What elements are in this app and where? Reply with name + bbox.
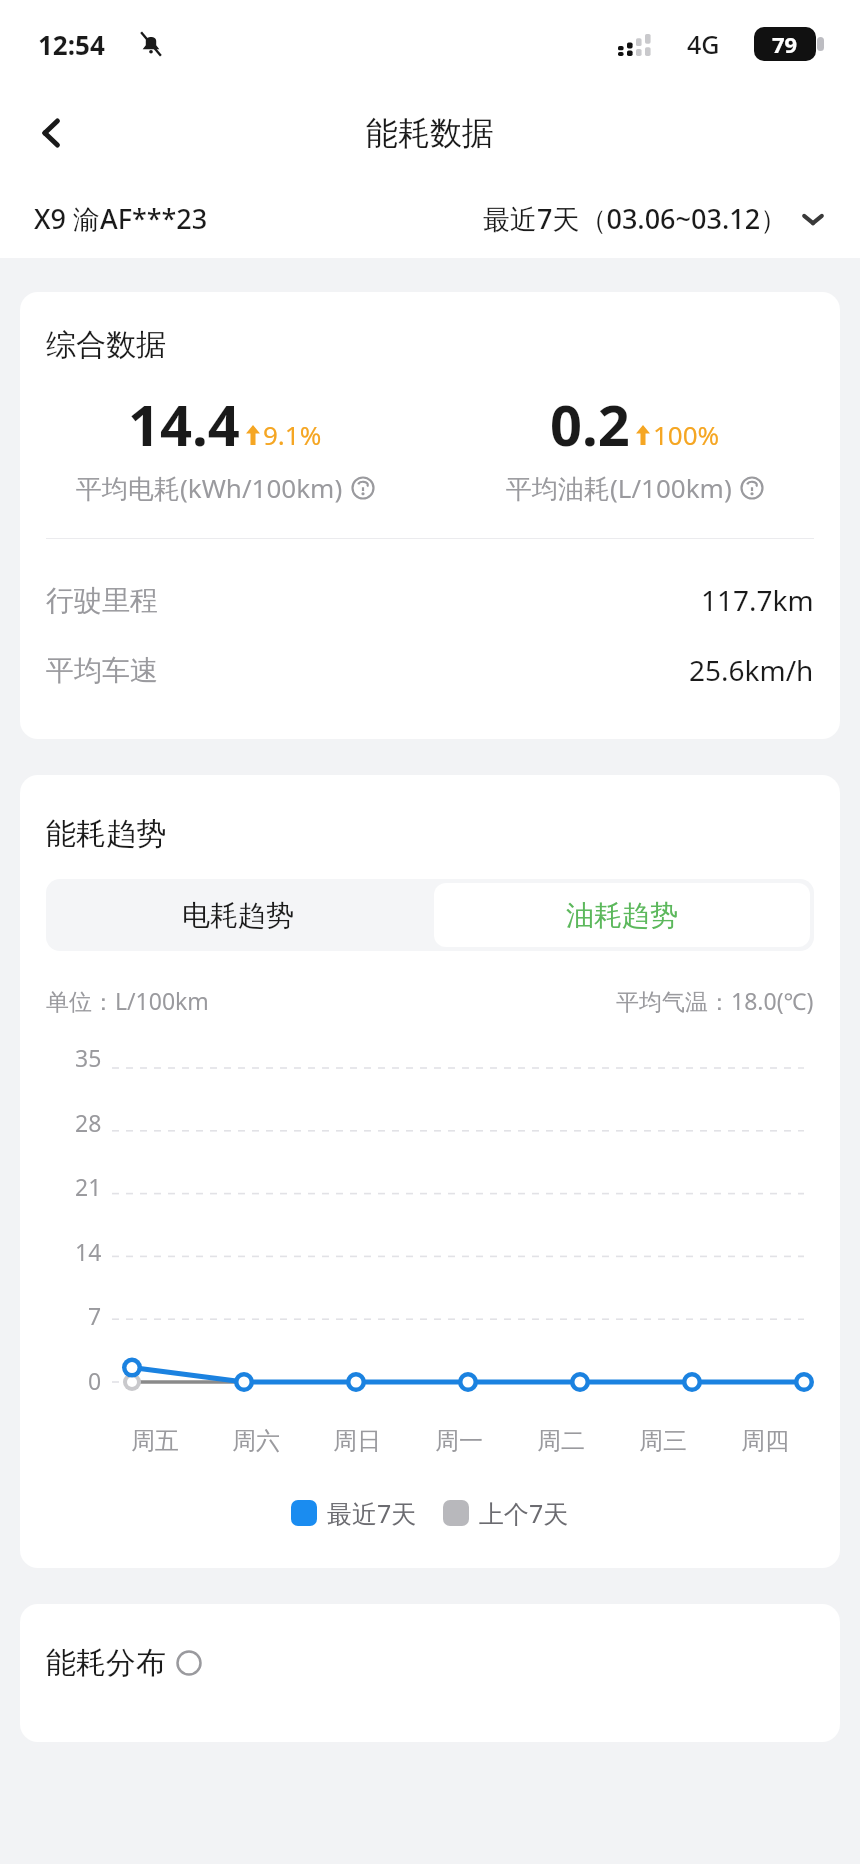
staticText: 14 — [75, 1236, 102, 1267]
staticText: 电耗趋势 — [182, 898, 294, 933]
staticText: X9 渝AF***23 — [34, 200, 208, 237]
staticText: 能耗数据 — [366, 113, 494, 153]
button[interactable]: 0.2 — [430, 386, 840, 506]
staticText: 平均车速 — [46, 653, 158, 688]
staticText: 能耗趋势 — [46, 815, 166, 853]
staticText: 7 — [88, 1300, 102, 1331]
staticText: 100% — [653, 417, 720, 452]
staticText: 117.7km — [701, 581, 814, 619]
staticText: 79 — [772, 29, 798, 59]
button[interactable]: 电耗趋势 — [46, 879, 430, 951]
staticText: 平均电耗(kWh/100km) — [76, 470, 343, 506]
staticText: 平均气温：18.0(℃) — [616, 985, 814, 1016]
staticText: 油耗趋势 — [566, 898, 678, 933]
staticText: 35 — [75, 1042, 102, 1073]
staticText: 周二 — [537, 1426, 585, 1456]
staticText: 能耗分布 — [46, 1644, 166, 1682]
staticText: 14.4 — [128, 386, 240, 462]
staticText: 0 — [88, 1365, 102, 1396]
staticText: 周五 — [131, 1426, 179, 1456]
button[interactable]: Help — [176, 1650, 202, 1676]
staticText: 0.2 — [550, 386, 630, 462]
staticText: 28 — [75, 1107, 102, 1138]
button[interactable]: Back — [20, 101, 84, 165]
staticText: 上个7天 — [479, 1496, 569, 1530]
staticText: 周四 — [741, 1426, 789, 1456]
staticText: 周日 — [333, 1426, 381, 1456]
staticText: 综合数据 — [46, 326, 166, 364]
button[interactable]: 行驶里程 — [20, 565, 840, 635]
staticText: 21 — [75, 1171, 102, 1202]
staticText: 周六 — [232, 1426, 280, 1456]
staticText: 周三 — [639, 1426, 687, 1456]
staticText: 4G — [687, 27, 720, 61]
staticText: 12:54 — [38, 27, 105, 62]
button[interactable]: 油耗趋势 — [434, 883, 810, 947]
staticText: 平均油耗(L/100km) — [506, 470, 732, 506]
button[interactable]: 最近7天（03.06~03.12） — [475, 200, 826, 237]
staticText: 单位：L/100km — [46, 985, 209, 1016]
button[interactable]: 14.4 — [20, 386, 430, 506]
staticText: 行驶里程 — [46, 583, 158, 618]
staticText: 25.6km/h — [689, 651, 814, 689]
staticText: 最近7天（03.06~03.12） — [483, 200, 788, 237]
staticText: 9.1% — [263, 417, 322, 452]
staticText: 最近7天 — [327, 1496, 417, 1530]
staticText: 周一 — [435, 1426, 483, 1456]
button[interactable]: 平均车速 — [20, 635, 840, 705]
